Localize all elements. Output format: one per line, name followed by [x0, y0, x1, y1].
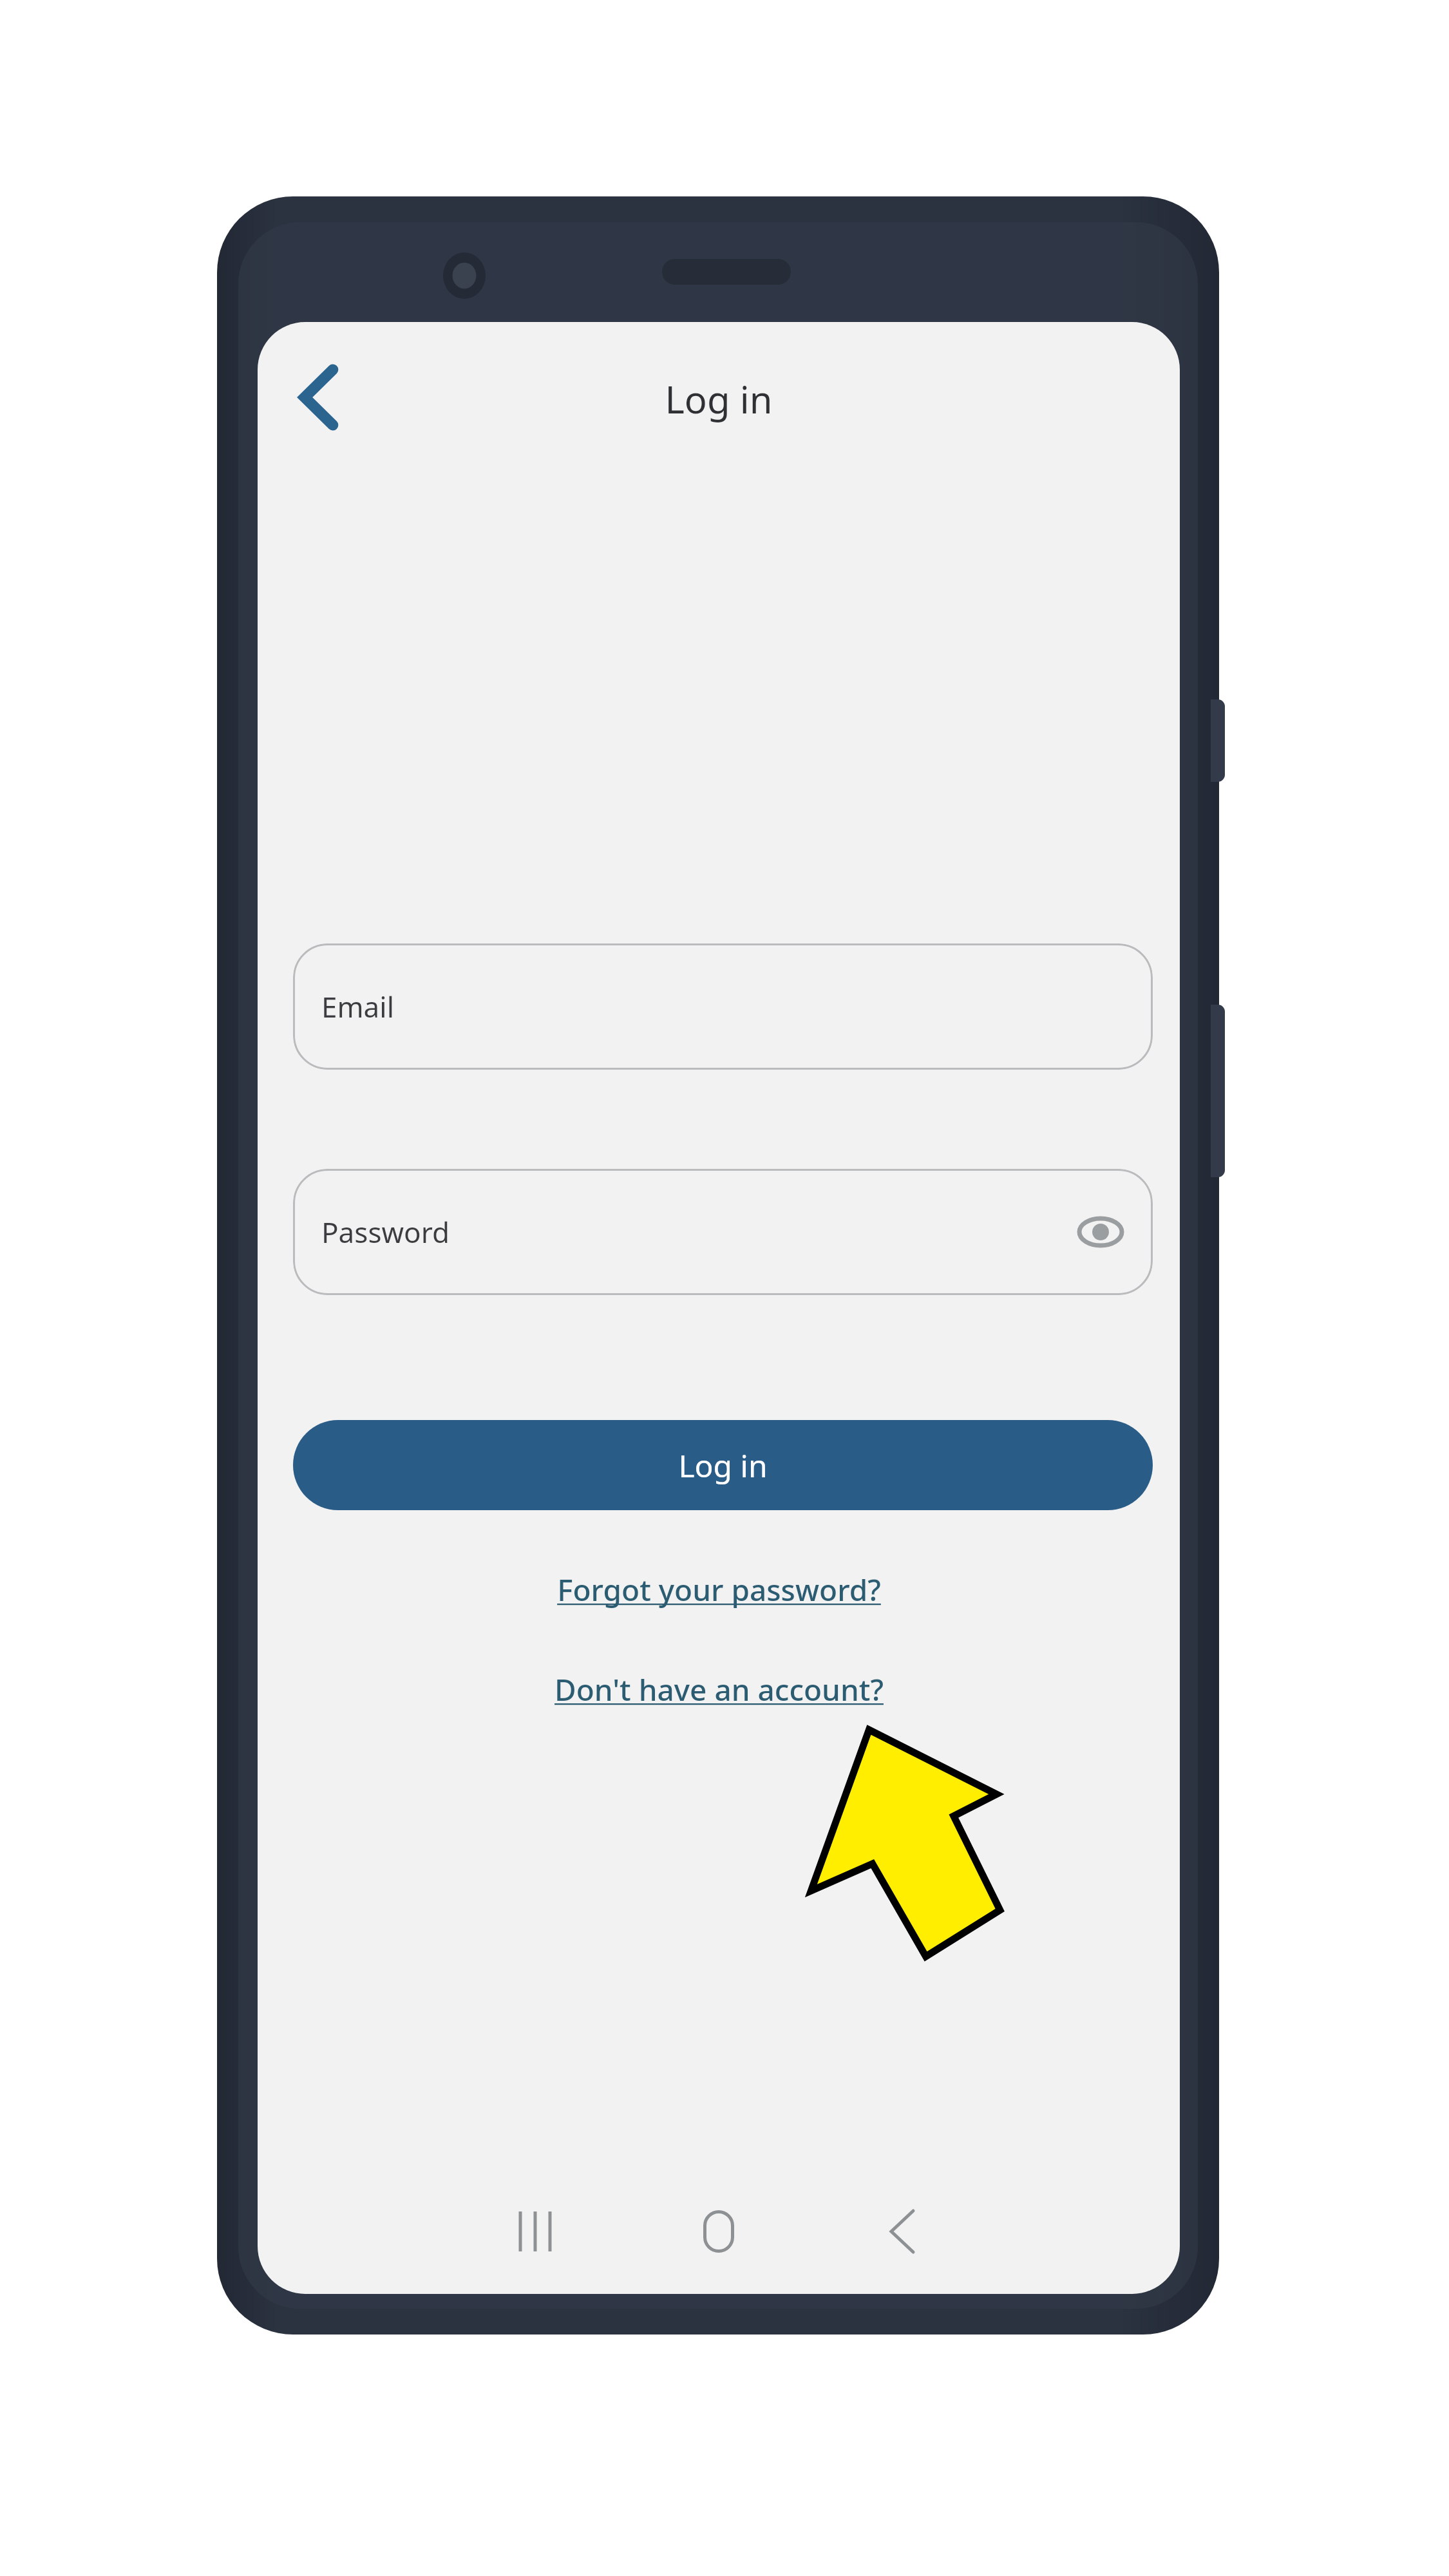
staticText: Forgot your password? [557, 1569, 881, 1610]
button[interactable]: Password [293, 1169, 1153, 1295]
button[interactable]: Recent apps [487, 2183, 583, 2280]
staticText: Don't have an account? [554, 1669, 884, 1710]
button[interactable]: Back [854, 2183, 951, 2280]
button[interactable]: Back [277, 355, 361, 439]
button[interactable]: Log in [293, 1420, 1153, 1510]
staticText: Log in [678, 1444, 768, 1486]
button[interactable]: Forgot your password? [542, 1562, 896, 1618]
staticText: Password [321, 1213, 450, 1251]
staticText: Log in [665, 374, 773, 424]
button[interactable]: Email [293, 943, 1153, 1070]
staticText: Email [321, 987, 394, 1026]
button[interactable]: Show password [1063, 1194, 1139, 1270]
button[interactable]: Home [670, 2183, 767, 2280]
button[interactable]: Don't have an account? [539, 1662, 899, 1718]
